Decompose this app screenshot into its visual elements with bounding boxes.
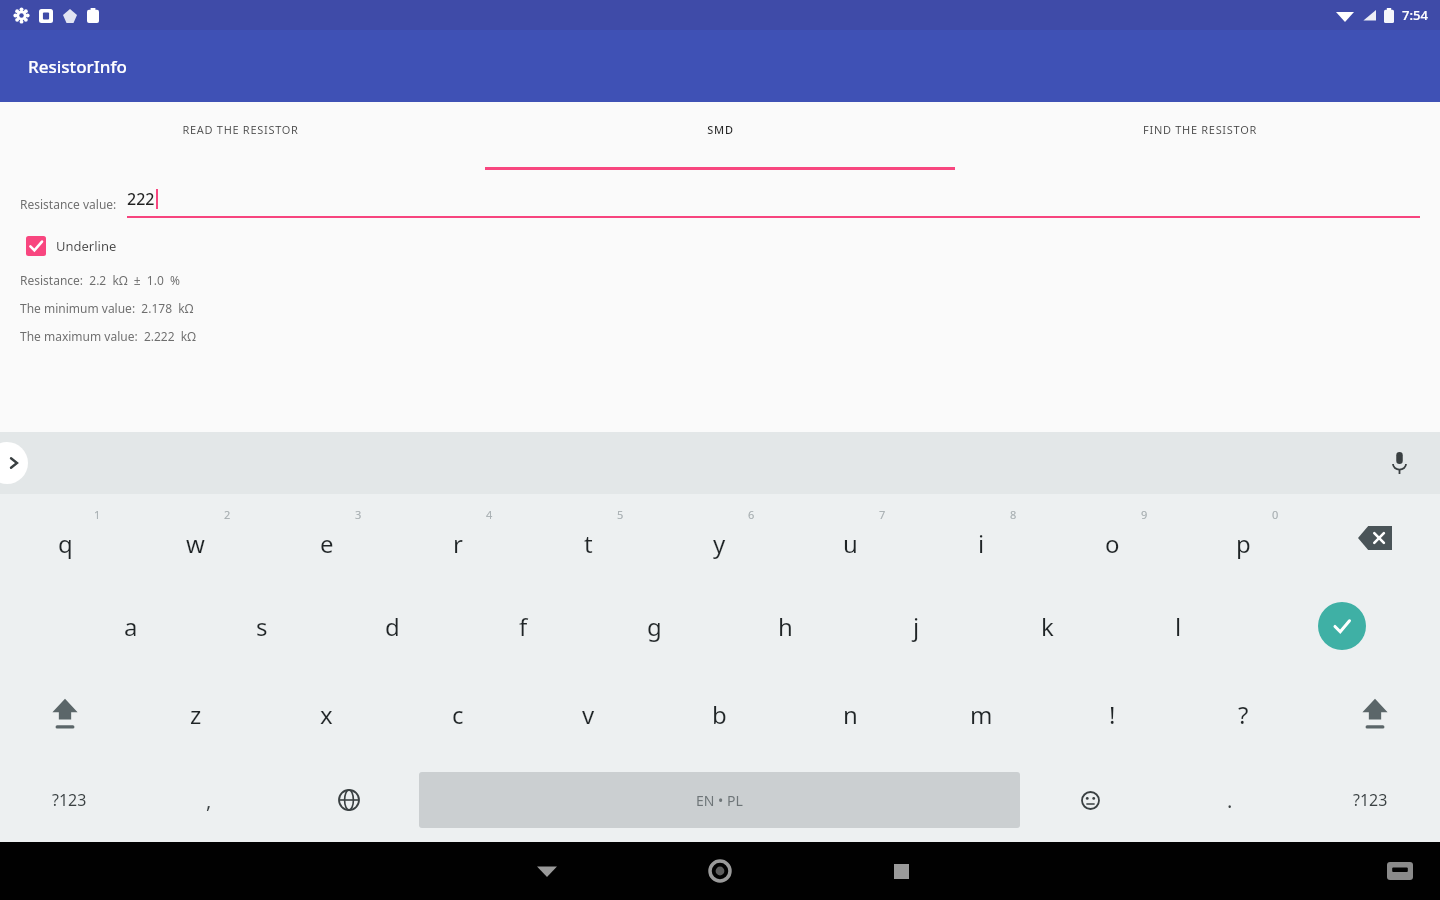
button[interactable]: b	[654, 670, 785, 758]
button[interactable]: o	[1047, 494, 1178, 582]
staticText: The minimum value: 2.178 kΩ	[20, 300, 194, 316]
staticText: 3	[355, 507, 362, 522]
staticText: j	[913, 610, 920, 643]
button[interactable]: h	[720, 582, 851, 670]
staticText: SMD	[707, 122, 734, 137]
button[interactable]: Change language	[279, 758, 419, 842]
staticText: .	[1227, 787, 1233, 814]
staticText: h	[778, 610, 793, 643]
button[interactable]: Backspace	[1309, 494, 1440, 582]
button[interactable]: FIND THE RESISTOR	[960, 102, 1440, 170]
button[interactable]: SMD	[480, 102, 960, 170]
staticText: 2	[224, 507, 231, 522]
button[interactable]: Emoji	[1020, 758, 1160, 842]
staticText: 6	[748, 507, 755, 522]
button[interactable]: Shift	[1309, 670, 1440, 758]
staticText: READ THE RESISTOR	[182, 122, 299, 137]
button[interactable]: Underline	[26, 236, 117, 256]
staticText: 4	[486, 507, 493, 522]
staticText: 0	[1272, 507, 1279, 522]
button[interactable]: y	[654, 494, 785, 582]
staticText: FIND THE RESISTOR	[1143, 122, 1257, 137]
staticText: e	[320, 527, 334, 560]
staticText: v	[582, 698, 595, 731]
staticText: n	[843, 698, 858, 731]
staticText: k	[1041, 610, 1054, 643]
button[interactable]: g	[589, 582, 720, 670]
staticText: ?123	[1353, 789, 1388, 811]
staticText: g	[647, 610, 662, 643]
button[interactable]: s	[196, 582, 327, 670]
button[interactable]: Home	[693, 844, 747, 898]
staticText: 7	[879, 507, 886, 522]
staticText: The maximum value: 2.222 kΩ	[20, 328, 196, 344]
button[interactable]: Back	[520, 844, 574, 898]
button[interactable]: d	[327, 582, 458, 670]
button[interactable]: Recent apps	[874, 844, 928, 898]
staticText: Underline	[56, 237, 117, 255]
staticText: 7:54	[1402, 6, 1428, 24]
staticText: r	[453, 527, 463, 560]
staticText: !	[1109, 698, 1116, 731]
staticText: 1	[94, 507, 101, 522]
staticText: m	[970, 698, 993, 731]
staticText: EN • PL	[696, 791, 743, 810]
button[interactable]: ?123	[0, 758, 139, 842]
button[interactable]: v	[523, 670, 654, 758]
button[interactable]: l	[1113, 582, 1244, 670]
staticText: u	[843, 527, 858, 560]
staticText: x	[320, 698, 333, 731]
staticText: f	[519, 610, 528, 643]
button[interactable]: 222	[127, 188, 1420, 218]
button[interactable]: e	[261, 494, 392, 582]
button[interactable]: z	[130, 670, 261, 758]
button[interactable]: q	[0, 494, 130, 582]
button[interactable]: u	[785, 494, 916, 582]
button[interactable]: w	[130, 494, 261, 582]
staticText: t	[584, 527, 593, 560]
button[interactable]: Hide keyboard	[1378, 849, 1422, 893]
button[interactable]: r	[392, 494, 523, 582]
staticText: 222	[127, 188, 155, 210]
staticText: 8	[1010, 507, 1017, 522]
staticText: y	[713, 527, 726, 560]
button[interactable]: t	[523, 494, 654, 582]
button[interactable]: f	[458, 582, 589, 670]
button[interactable]: c	[392, 670, 523, 758]
staticText: 5	[617, 507, 624, 522]
button[interactable]: .	[1160, 758, 1300, 842]
staticText: p	[1236, 527, 1251, 560]
button[interactable]: Expand suggestions	[0, 442, 28, 484]
staticText: q	[58, 527, 73, 560]
button[interactable]: !	[1047, 670, 1178, 758]
button[interactable]: n	[785, 670, 916, 758]
button[interactable]: ?	[1178, 670, 1309, 758]
staticText: z	[190, 698, 202, 731]
button[interactable]: j	[851, 582, 982, 670]
staticText: ,	[206, 787, 212, 814]
button[interactable]: k	[982, 582, 1113, 670]
staticText: Resistance: 2.2 kΩ ± 1.0 %	[20, 272, 180, 288]
button[interactable]: x	[261, 670, 392, 758]
button[interactable]: ,	[139, 758, 279, 842]
button[interactable]: Voice input	[1382, 446, 1416, 480]
button[interactable]: p	[1178, 494, 1309, 582]
staticText: ResistorInfo	[28, 55, 127, 78]
staticText: o	[1105, 527, 1120, 560]
button[interactable]: a	[65, 582, 196, 670]
staticText: ?	[1238, 698, 1249, 731]
button[interactable]: EN • PL	[419, 772, 1020, 828]
button[interactable]: Enter	[1244, 582, 1440, 670]
staticText: ?123	[52, 789, 87, 811]
staticText: a	[124, 610, 138, 643]
staticText: l	[1175, 610, 1182, 643]
button[interactable]: i	[916, 494, 1047, 582]
staticText: w	[186, 527, 205, 560]
button[interactable]: Shift	[0, 670, 130, 758]
staticText: d	[385, 610, 400, 643]
staticText: 9	[1141, 507, 1148, 522]
button[interactable]: READ THE RESISTOR	[0, 102, 480, 170]
button[interactable]: m	[916, 670, 1047, 758]
staticText: c	[452, 698, 464, 731]
button[interactable]: ?123	[1300, 758, 1440, 842]
